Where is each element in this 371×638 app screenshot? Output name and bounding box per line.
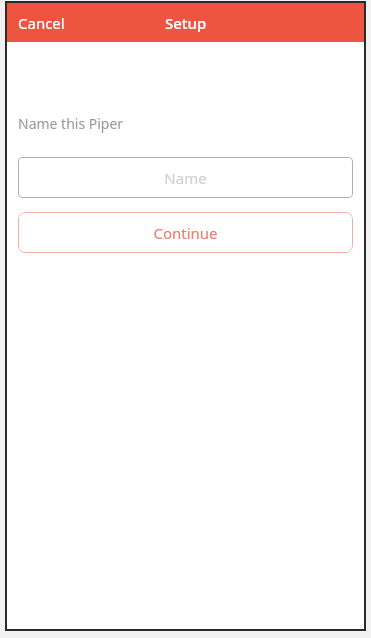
staticText: Setup [165,13,207,33]
staticText: Continue [153,223,218,243]
staticText: Name [164,168,207,188]
button[interactable]: Continue [18,212,353,253]
staticText: Cancel [18,13,65,33]
staticText: Name this Piper [18,114,124,133]
button[interactable]: Cancel [7,7,76,39]
button[interactable]: Name [18,157,353,198]
